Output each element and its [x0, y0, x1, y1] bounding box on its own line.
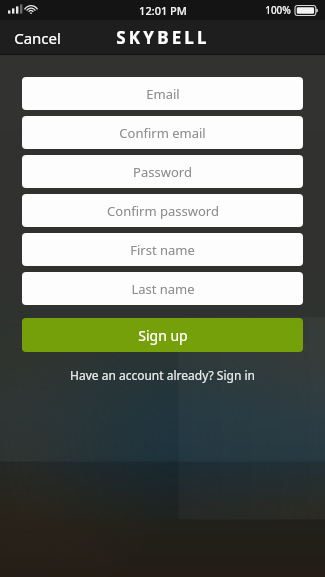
staticText: Confirm password — [107, 202, 219, 220]
button[interactable]: First name — [22, 233, 303, 266]
staticText: SKYBELL — [116, 26, 210, 49]
button[interactable]: Password — [22, 155, 303, 188]
staticText: 100% — [265, 3, 291, 17]
button[interactable]: Email — [22, 77, 303, 110]
staticText: Have an account already? Sign in — [70, 367, 255, 383]
staticText: Sign up — [138, 326, 188, 345]
button[interactable]: Cancel — [0, 23, 75, 53]
button[interactable]: Have an account already? Sign in — [0, 364, 325, 386]
button[interactable]: Confirm password — [22, 194, 303, 227]
staticText: 12:01 PM — [139, 3, 187, 18]
staticText: Confirm email — [119, 124, 206, 142]
staticText: Password — [133, 163, 192, 181]
staticText: Last name — [131, 280, 195, 298]
staticText: First name — [130, 241, 195, 259]
button[interactable]: Last name — [22, 272, 303, 305]
button[interactable]: Sign up — [22, 318, 303, 352]
staticText: Cancel — [14, 28, 61, 48]
button[interactable]: Confirm email — [22, 116, 303, 149]
staticText: Email — [146, 85, 180, 103]
